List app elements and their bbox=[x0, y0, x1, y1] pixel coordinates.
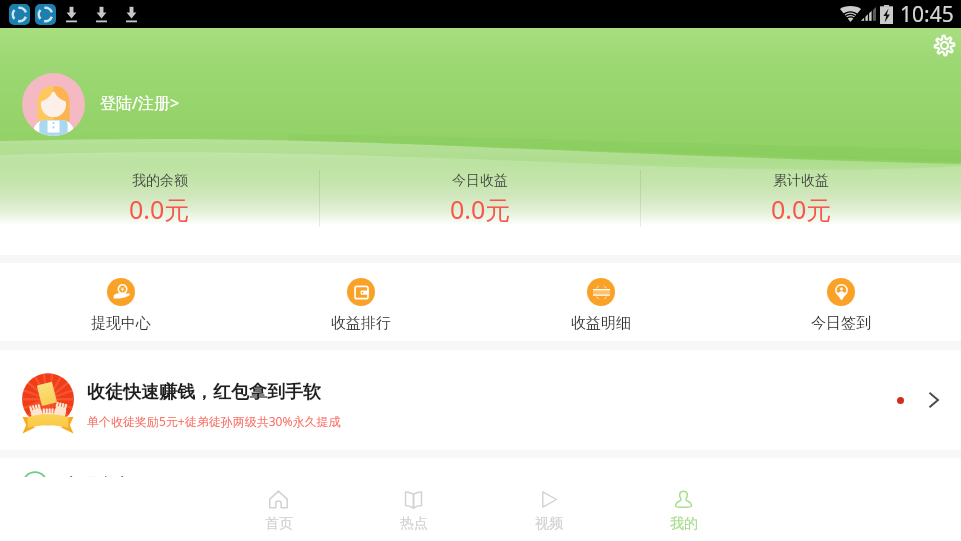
staticText: 视频 bbox=[535, 515, 563, 533]
button[interactable]: 我的 bbox=[616, 477, 751, 541]
button[interactable]: 我的余额 bbox=[0, 170, 319, 226]
button[interactable]: 客服中心 bbox=[0, 458, 961, 522]
staticText: 0.0元 bbox=[450, 192, 511, 226]
staticText: 客服中心 bbox=[64, 474, 132, 495]
button[interactable]: 视频 bbox=[481, 477, 616, 541]
staticText: 我的 bbox=[670, 515, 698, 533]
staticText: 热点 bbox=[400, 515, 428, 533]
staticText: 收徒快速赚钱，红包拿到手软 bbox=[87, 381, 321, 404]
button[interactable]: 收徒快速赚钱，红包拿到手软 bbox=[0, 350, 961, 450]
button[interactable]: 收益明细 bbox=[481, 271, 721, 333]
button[interactable]: 今日收益 bbox=[320, 170, 640, 226]
staticText: 0.0元 bbox=[129, 192, 190, 226]
button[interactable]: 登陆/注册> bbox=[100, 92, 180, 114]
staticText: 收益排行 bbox=[331, 314, 391, 333]
staticText: 0.0元 bbox=[771, 192, 832, 226]
button[interactable]: 热点 bbox=[346, 477, 481, 541]
staticText: 首页 bbox=[265, 515, 293, 533]
button[interactable]: 首页 bbox=[211, 477, 346, 541]
staticText: 收益明细 bbox=[571, 314, 631, 333]
staticText: 今日签到 bbox=[811, 314, 871, 333]
staticText: 提现中心 bbox=[91, 314, 151, 333]
button[interactable]: Settings bbox=[927, 28, 961, 62]
staticText: 单个收徒奖励5元+徒弟徒孙两级共30%永久提成 bbox=[87, 413, 341, 429]
button[interactable]: 累计收益 bbox=[641, 170, 961, 226]
button[interactable]: 提现中心 bbox=[0, 271, 241, 333]
staticText: 我的余额 bbox=[132, 172, 188, 190]
staticText: 10:45 bbox=[900, 0, 954, 28]
staticText: 今日收益 bbox=[452, 172, 508, 190]
button[interactable]: 收益排行 bbox=[241, 271, 481, 333]
button[interactable] bbox=[22, 73, 85, 136]
button[interactable]: 今日签到 bbox=[721, 271, 961, 333]
staticText: 累计收益 bbox=[773, 172, 829, 190]
